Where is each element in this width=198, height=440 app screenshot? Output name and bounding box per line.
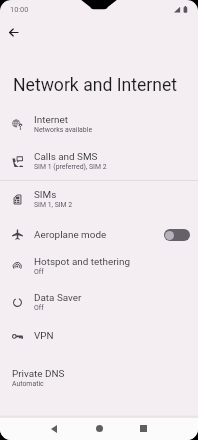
staticText: Private DNS [12, 368, 65, 380]
staticText: 10:00 [10, 5, 29, 14]
staticText: Off [34, 268, 44, 276]
staticText: Off [34, 304, 44, 312]
staticText: Automatic [12, 380, 44, 388]
button[interactable]: Home [84, 417, 115, 440]
staticText: Network and Internet [13, 75, 178, 96]
button[interactable]: Hotspot and tethering [0, 247, 198, 285]
staticText: VPN [34, 330, 54, 342]
button[interactable]: Back [2, 21, 25, 44]
button[interactable]: Recent apps [128, 417, 159, 440]
button[interactable]: Data Saver [0, 283, 198, 321]
button[interactable]: VPN [0, 321, 198, 350]
staticText: Hotspot and tethering [34, 256, 130, 268]
staticText: Networks available [34, 126, 93, 134]
button[interactable]: Private DNS [0, 359, 198, 397]
button[interactable]: Calls and SMS [0, 142, 198, 180]
button[interactable]: Back [38, 417, 69, 440]
staticText: SIMs [34, 189, 57, 201]
staticText: SIM 1, SIM 2 [34, 201, 73, 209]
staticText: Data Saver [34, 292, 82, 304]
button[interactable]: SIMs [0, 180, 198, 218]
staticText: Internet [34, 114, 68, 126]
button[interactable]: Aeroplane mode [0, 220, 198, 249]
button[interactable]: Aeroplane mode toggle [164, 229, 190, 241]
staticText: Calls and SMS [34, 151, 98, 163]
staticText: SIM 1 (preferred), SIM 2 [34, 163, 107, 171]
button[interactable]: Internet [0, 105, 198, 143]
staticText: Aeroplane mode [34, 229, 107, 241]
